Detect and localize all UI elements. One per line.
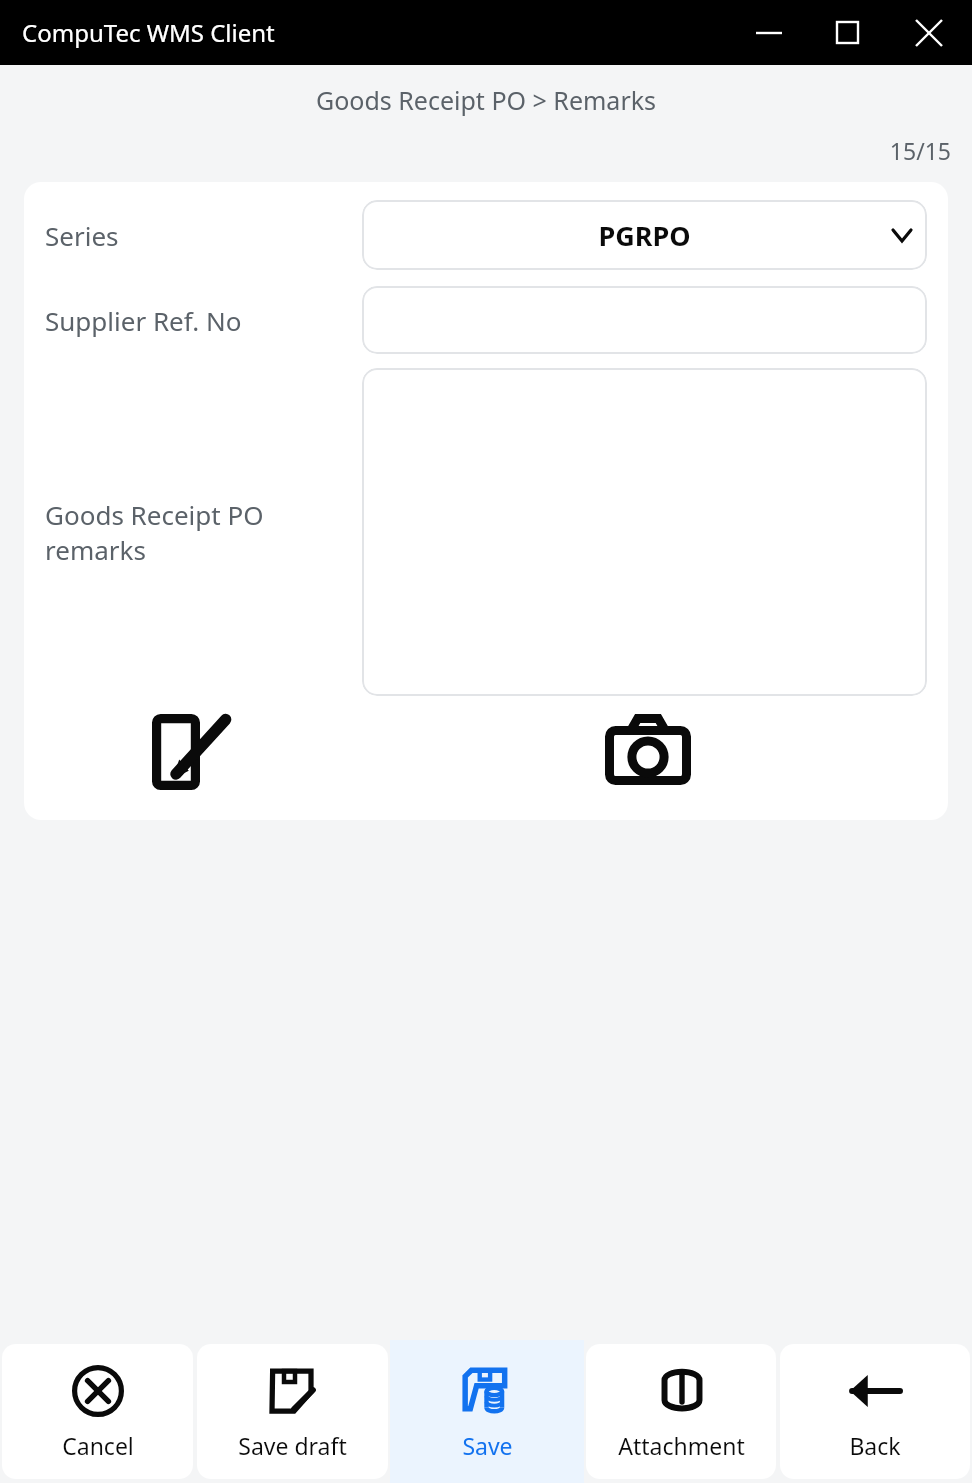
button[interactable]: Save draft — [197, 1344, 388, 1479]
staticText: remarks — [45, 532, 146, 567]
button[interactable]: Save — [390, 1340, 584, 1483]
staticText: CompuTec WMS Client — [22, 16, 275, 49]
button[interactable]: Back — [780, 1344, 970, 1479]
staticText: Goods Receipt PO — [45, 497, 264, 532]
button[interactable]: Minimize — [730, 0, 808, 65]
staticText: Supplier Ref. No — [45, 303, 242, 338]
staticText: Back — [849, 1430, 901, 1461]
button[interactable]: Signature — [148, 706, 236, 794]
staticText: 15/15 — [0, 135, 951, 166]
staticText: Attachment — [618, 1430, 745, 1461]
button[interactable]: Cancel — [2, 1344, 193, 1479]
button[interactable]: Attachment — [586, 1344, 776, 1479]
staticText: Cancel — [62, 1430, 134, 1461]
button[interactable]: Close — [886, 0, 972, 65]
staticText: Save — [462, 1430, 513, 1461]
staticText: PGRPO — [362, 217, 927, 254]
button[interactable]: Maximize — [808, 0, 886, 65]
staticText: Save draft — [238, 1430, 347, 1461]
button[interactable]: Take photo — [602, 704, 694, 796]
button[interactable] — [362, 286, 927, 354]
button[interactable] — [362, 368, 927, 696]
staticText: Series — [45, 218, 119, 253]
button[interactable]: PGRPO — [362, 200, 927, 270]
staticText: Goods Receipt PO > Remarks — [0, 83, 972, 117]
